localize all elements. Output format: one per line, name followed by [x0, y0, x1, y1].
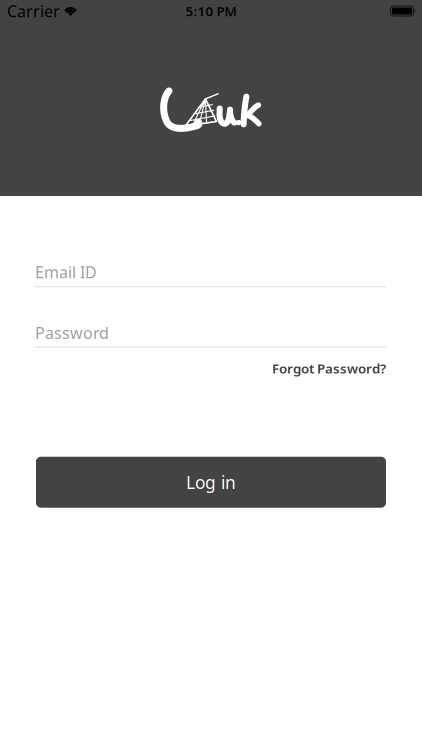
button[interactable]: Log in	[36, 457, 386, 508]
button[interactable]: Password	[0, 322, 422, 347]
button[interactable]: Forgot Password?	[272, 359, 386, 377]
staticText: 5:10 PM	[185, 2, 236, 20]
staticText: Carrier	[7, 0, 60, 22]
button[interactable]: Email ID	[0, 261, 422, 287]
staticText: Log in	[186, 471, 236, 494]
staticText: Email ID	[35, 261, 97, 283]
staticText: Password	[35, 322, 109, 343]
staticText: Forgot Password?	[272, 359, 386, 377]
